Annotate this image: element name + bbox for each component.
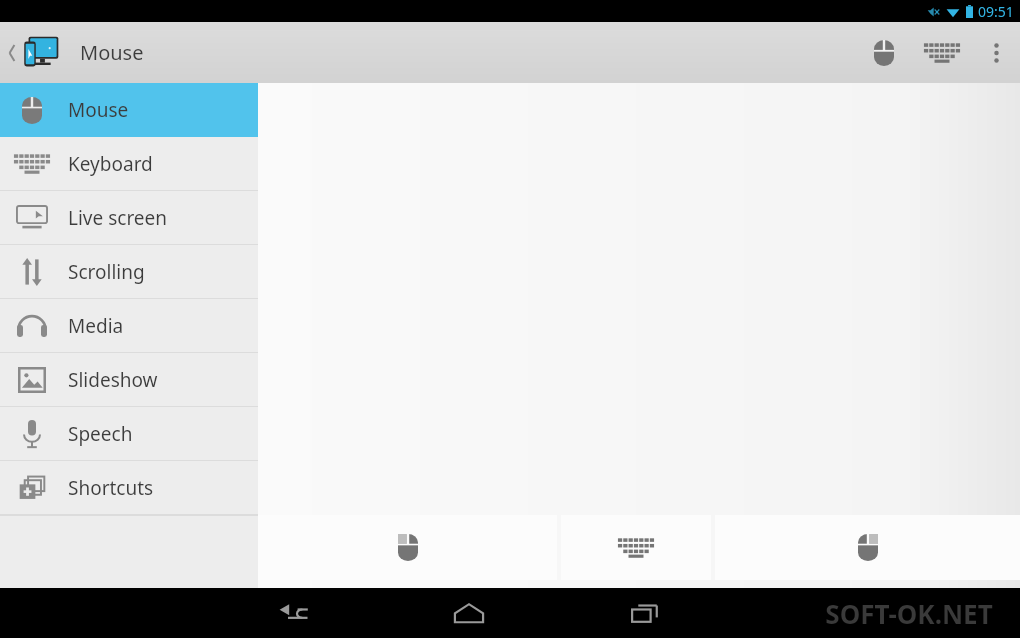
button[interactable]: Touchpad	[258, 83, 1020, 515]
button[interactable]: Right click	[715, 515, 1020, 580]
staticText: Mouse	[68, 97, 129, 123]
staticText: Mouse	[80, 39, 144, 66]
button[interactable]: Media	[0, 299, 258, 353]
staticText: Slideshow	[68, 367, 158, 393]
staticText: Scrolling	[68, 259, 145, 285]
staticText: 09:51	[978, 2, 1014, 21]
button[interactable]: Mouse	[0, 83, 258, 137]
staticText: Live screen	[68, 205, 168, 231]
button[interactable]: Slideshow	[0, 353, 258, 407]
staticText: Shortcuts	[68, 475, 154, 501]
staticText: Speech	[68, 421, 133, 447]
button[interactable]: Shortcuts	[0, 461, 258, 515]
button[interactable]: Left click	[258, 515, 557, 580]
button[interactable]: Keyboard	[912, 22, 972, 83]
button[interactable]: Live screen	[0, 191, 258, 245]
staticText: Media	[68, 313, 124, 339]
button[interactable]: Mouse mode	[856, 22, 912, 83]
button[interactable]: Speech	[0, 407, 258, 461]
button[interactable]: Up	[2, 29, 72, 77]
button[interactable]: More options	[972, 22, 1020, 83]
button[interactable]: Home	[413, 588, 525, 638]
button[interactable]: Back	[238, 588, 349, 638]
button[interactable]: Recent apps	[589, 588, 701, 638]
staticText: SOFT-OK.NET	[825, 596, 993, 631]
staticText: Keyboard	[68, 151, 153, 177]
button[interactable]: Keyboard	[0, 137, 258, 191]
button[interactable]: Keyboard	[561, 515, 711, 580]
button[interactable]: Scrolling	[0, 245, 258, 299]
